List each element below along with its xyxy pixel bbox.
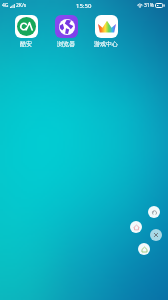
staticText: 15:50 (76, 2, 92, 10)
staticText: 4G (2, 2, 9, 9)
staticText: 31% (144, 2, 154, 9)
button[interactable]: Home (130, 221, 142, 233)
button[interactable]: 浏览器 (46, 15, 86, 48)
staticText: 酷安 (20, 40, 32, 48)
button[interactable]: 游戏中心 (86, 15, 126, 48)
button[interactable]: Back (148, 206, 160, 218)
staticText: 2K/s (16, 2, 27, 9)
staticText: 游戏中心 (94, 40, 118, 48)
staticText: 浏览器 (57, 40, 75, 48)
button[interactable]: Close (150, 229, 162, 241)
button[interactable]: 酷安 (6, 15, 46, 48)
button[interactable]: Clean (138, 243, 150, 255)
